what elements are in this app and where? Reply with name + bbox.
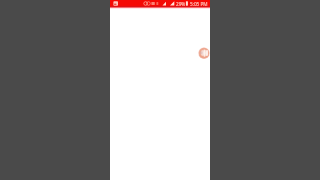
staticText: 5:05 PM [190, 1, 208, 7]
button[interactable]: Profile photo [198, 47, 210, 59]
staticText: 29% [176, 1, 186, 7]
